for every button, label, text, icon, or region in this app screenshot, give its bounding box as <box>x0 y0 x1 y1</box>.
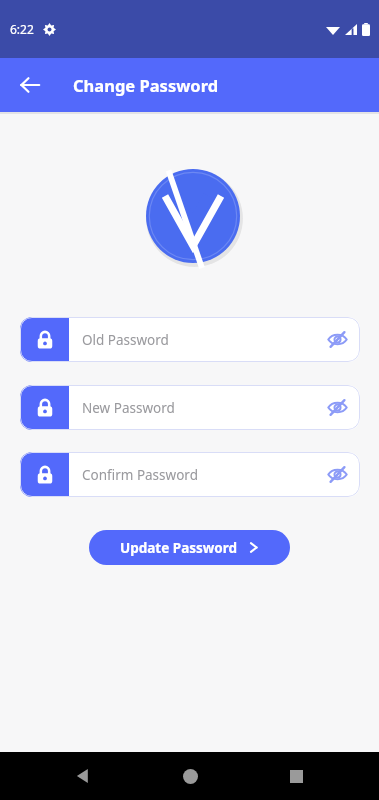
staticText: New Password <box>82 399 315 417</box>
button[interactable]: Home <box>166 752 214 800</box>
button[interactable]: Toggle password visibility <box>315 385 360 430</box>
staticText: Change Password <box>73 74 219 96</box>
button[interactable]: Update Password <box>89 530 290 565</box>
staticText: Confirm Password <box>82 466 315 484</box>
staticText: Old Password <box>82 331 315 349</box>
button[interactable]: Recent apps <box>272 752 320 800</box>
button[interactable]: Confirm Password <box>20 452 360 497</box>
button[interactable]: New Password <box>20 385 360 430</box>
button[interactable]: Toggle password visibility <box>315 317 360 362</box>
button[interactable]: Old Password <box>20 317 360 362</box>
button[interactable]: Toggle password visibility <box>315 452 360 497</box>
button[interactable]: Back <box>8 63 52 107</box>
button[interactable]: Back <box>59 752 107 800</box>
staticText: 6:22 <box>10 21 34 37</box>
staticText: Update Password <box>120 539 238 557</box>
